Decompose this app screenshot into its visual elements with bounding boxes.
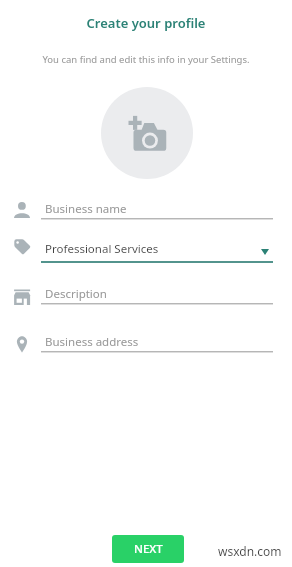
other: Open category list	[261, 249, 269, 255]
button[interactable]: Professional Services	[0, 239, 292, 265]
staticText: You can find and edit this info in your …	[0, 53, 292, 66]
button[interactable]: Description	[0, 281, 292, 307]
button[interactable]: Business name	[0, 196, 292, 222]
button[interactable]: Business address	[0, 329, 292, 355]
staticText: Business name	[45, 201, 127, 217]
staticText: Professional Services	[45, 241, 159, 257]
staticText: NEXT	[134, 541, 163, 557]
button[interactable]: NEXT	[112, 535, 184, 563]
staticText: Business address	[45, 334, 139, 350]
staticText: Create your profile	[0, 14, 292, 32]
button[interactable]: Add profile photo	[101, 87, 193, 179]
staticText: wsxdn.com	[218, 543, 282, 559]
staticText: Description	[45, 286, 107, 302]
